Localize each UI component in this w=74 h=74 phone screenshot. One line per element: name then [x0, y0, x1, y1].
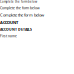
- staticText: Complete the form below: [0, 12, 44, 18]
- staticText: Complete the form below: [0, 0, 37, 4]
- staticText: ACCOUNT: [0, 20, 18, 25]
- staticText: Complete the form below: [0, 6, 40, 10]
- staticText: ACCOUNT DETAILS: [0, 27, 32, 32]
- staticText: First name: [0, 34, 17, 38]
